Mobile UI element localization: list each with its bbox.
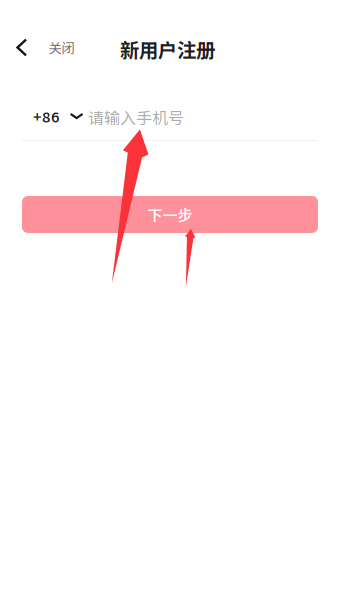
button[interactable]: 下一步 [22, 196, 318, 233]
button[interactable]: Close [8, 32, 82, 62]
staticText: +86 [33, 105, 60, 127]
staticText: 关闭 [48, 38, 74, 57]
staticText: 下一步 [147, 204, 192, 225]
staticText: 请输入手机号 [88, 105, 184, 129]
button[interactable]: Country code +86 [29, 103, 88, 129]
button[interactable]: Phone number [88, 104, 318, 130]
staticText: 新用户注册 [120, 35, 215, 63]
